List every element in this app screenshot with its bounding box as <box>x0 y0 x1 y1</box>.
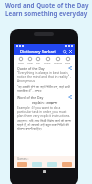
staticText: "वह सबकी होने का जहाँ निर्मित मन, कहाँ स… <box>17 85 72 93</box>
staticText: explain : समझाना <box>17 100 72 105</box>
button[interactable]: Word of the Day <box>17 95 44 100</box>
button[interactable]: Share <box>68 95 72 99</box>
button[interactable]: Quote of the Day <box>17 66 45 71</box>
staticText: Rate <box>65 61 71 64</box>
button[interactable]: Dictionary Sarkari <box>20 49 56 55</box>
staticText: Share <box>44 61 51 64</box>
staticText: Word and Quote of the Day <box>5 1 89 9</box>
button[interactable]: Close <box>68 49 73 54</box>
staticText: Games › <box>17 157 29 161</box>
staticText: Learn something everyday <box>5 9 88 17</box>
staticText: Setting <box>54 61 62 64</box>
button[interactable]: Rate <box>65 57 71 64</box>
button[interactable]: Search <box>62 49 67 54</box>
staticText: उदाहरण : यदि आप किसी विशेष कार्य को करना… <box>17 119 72 131</box>
staticText: Hindi <box>27 61 33 64</box>
staticText: Example : If you want to do a particular… <box>17 106 72 118</box>
button[interactable]: Fav <box>36 57 40 64</box>
button[interactable] <box>32 162 42 167</box>
button[interactable]: Voice <box>18 57 24 64</box>
button[interactable]: Hindi <box>27 57 33 64</box>
button[interactable] <box>62 162 72 167</box>
button[interactable]: Share <box>44 57 51 64</box>
button[interactable] <box>17 162 27 167</box>
button[interactable]: Setting <box>54 57 62 64</box>
staticText: Voice <box>18 61 24 64</box>
staticText: "Everything is always in best basis, not… <box>17 71 72 83</box>
staticText: Fav <box>36 61 40 64</box>
button[interactable] <box>47 162 57 167</box>
button[interactable]: Share <box>68 66 72 70</box>
